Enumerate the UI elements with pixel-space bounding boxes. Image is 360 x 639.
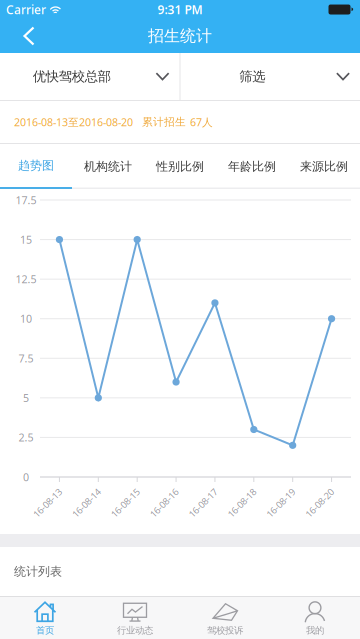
button[interactable]: 行业动态 xyxy=(90,597,180,639)
staticText: 17.5 xyxy=(15,193,36,207)
staticText: 统计列表 xyxy=(14,564,62,579)
button[interactable]: 来源比例 xyxy=(288,144,360,189)
staticText: 16-08-14 xyxy=(68,497,104,509)
button[interactable]: 驾校投诉 xyxy=(180,597,270,639)
button[interactable]: 年龄比例 xyxy=(216,144,288,189)
staticText: 2.5 xyxy=(18,430,33,444)
staticText: 10 xyxy=(20,312,32,326)
staticText: 5 xyxy=(23,391,29,405)
staticText: 来源比例 xyxy=(300,159,348,174)
staticText: Carrier xyxy=(6,1,46,17)
staticText: 年龄比例 xyxy=(228,159,276,174)
button[interactable]: 趋势图 xyxy=(0,144,72,189)
button[interactable]: Back xyxy=(0,19,48,53)
staticText: 优快驾校总部 xyxy=(33,68,111,85)
staticText: 性别比例 xyxy=(156,159,204,174)
staticText: 招生统计 xyxy=(148,26,212,46)
staticText: 16-08-13 xyxy=(29,497,65,509)
staticText: 16-08-16 xyxy=(146,497,182,509)
staticText: 首页 xyxy=(36,625,54,636)
staticText: 15 xyxy=(20,232,32,247)
button[interactable]: 机构统计 xyxy=(72,144,144,189)
button[interactable]: 我的 xyxy=(270,597,360,639)
staticText: 7.5 xyxy=(18,351,33,365)
staticText: 我的 xyxy=(306,625,324,636)
staticText: 9:31 PM xyxy=(157,1,202,17)
staticText: 16-08-19 xyxy=(263,497,299,509)
staticText: 累计招生 xyxy=(142,115,186,128)
staticText: 16-08-20 xyxy=(302,497,338,509)
staticText: 驾校投诉 xyxy=(207,625,243,636)
staticText: 16-08-18 xyxy=(224,497,260,509)
staticText: 2016-08-13至2016-08-20 xyxy=(14,115,133,129)
button[interactable]: 筛选 xyxy=(180,53,360,100)
staticText: 16-08-15 xyxy=(107,497,143,509)
staticText: 16-08-17 xyxy=(185,497,221,509)
staticText: 趋势图 xyxy=(18,158,54,173)
staticText: 筛选 xyxy=(239,68,265,85)
staticText: 0 xyxy=(23,470,29,484)
button[interactable]: 首页 xyxy=(0,597,90,639)
staticText: 12.5 xyxy=(15,272,36,286)
button[interactable]: 优快驾校总部 xyxy=(0,53,179,100)
staticText: 67人 xyxy=(190,115,213,129)
button[interactable]: 性别比例 xyxy=(144,144,216,189)
staticText: 机构统计 xyxy=(84,159,132,174)
staticText: 行业动态 xyxy=(117,625,153,636)
